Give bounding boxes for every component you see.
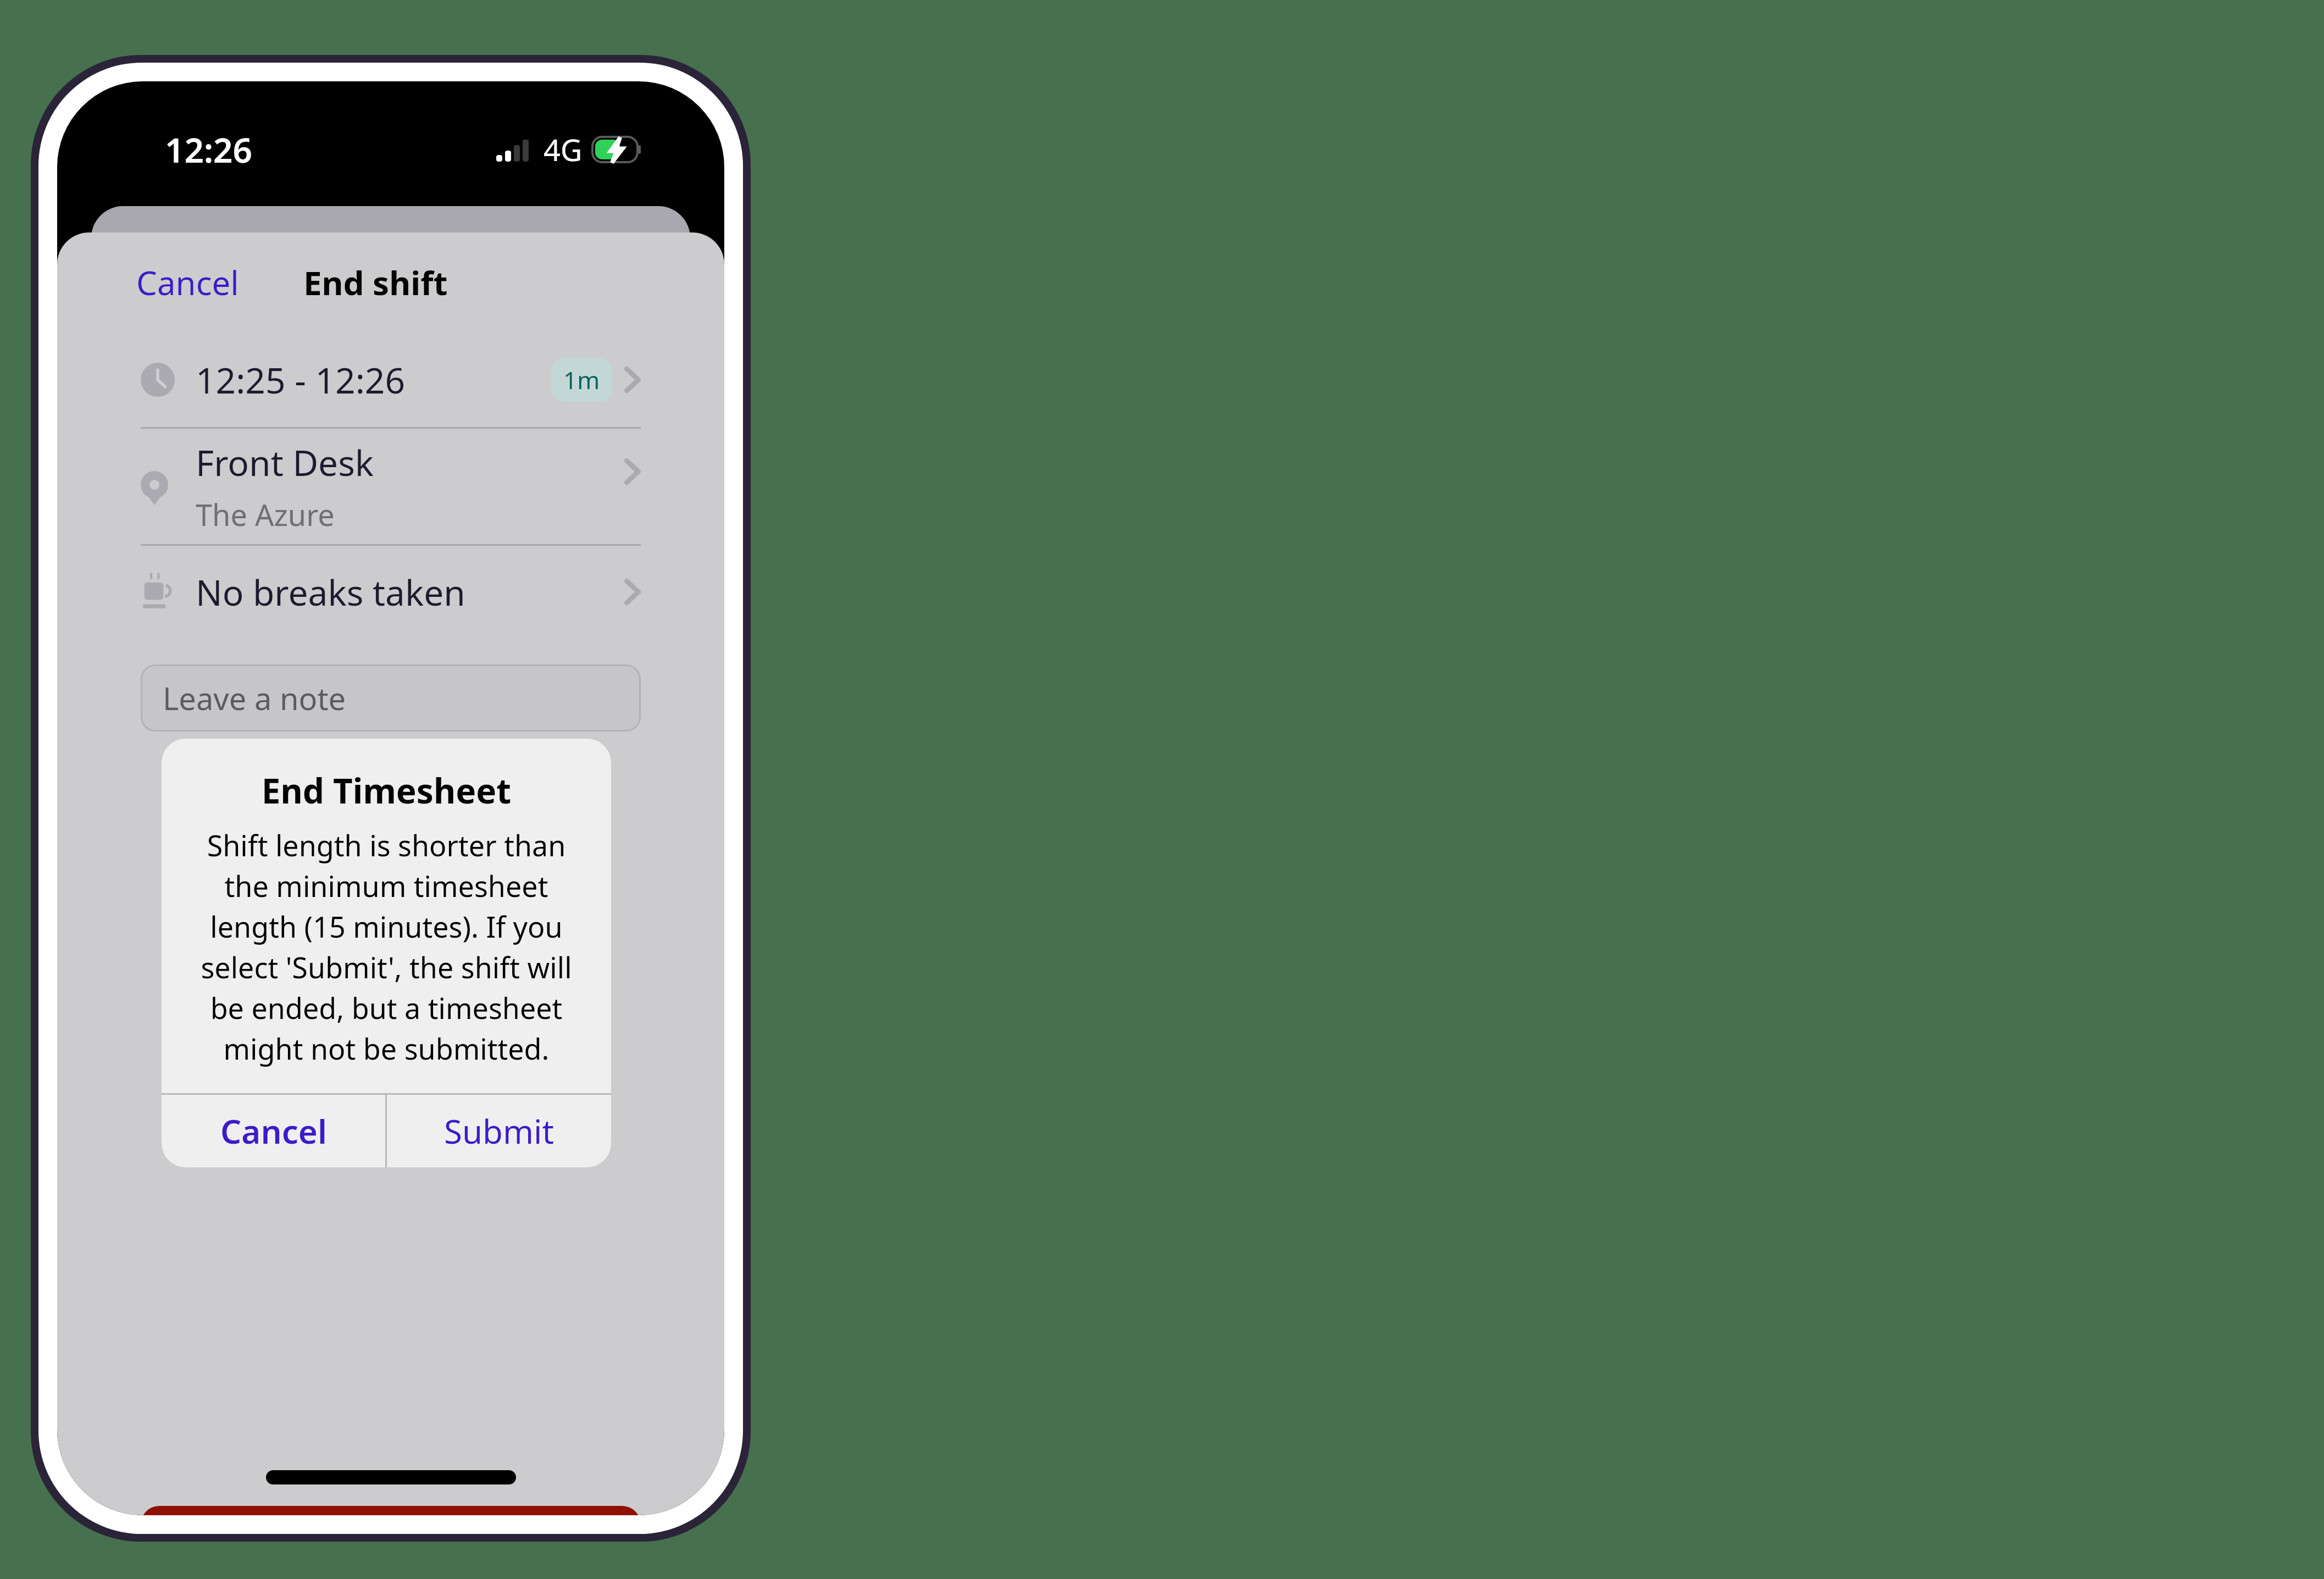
staticText: No breaks taken (196, 568, 465, 616)
button[interactable]: Front Desk (57, 429, 724, 544)
staticText: End shift (303, 260, 448, 305)
staticText: 1m (563, 363, 600, 396)
staticText: Leave a note (163, 677, 346, 719)
button[interactable]: Leave a note (141, 664, 641, 732)
button[interactable]: Submit (387, 1095, 611, 1167)
staticText: 4G (543, 129, 583, 170)
staticText: Shift length is shorter than the minimum… (190, 825, 583, 1068)
staticText: Cancel (136, 260, 239, 305)
staticText: 12:26 (165, 126, 252, 173)
staticText: The Azure (196, 494, 335, 535)
staticText: 12:25 - 12:26 (196, 356, 406, 404)
staticText: Cancel (220, 1109, 327, 1154)
staticText: Submit (444, 1109, 554, 1154)
button[interactable]: 12:25 - 12:26 (57, 333, 724, 427)
button[interactable]: Cancel (129, 254, 247, 311)
staticText: Front Desk (196, 439, 374, 486)
button[interactable]: No breaks taken (57, 546, 724, 638)
staticText: End Timesheet (162, 767, 611, 813)
button[interactable]: End shift (141, 1506, 641, 1515)
button[interactable]: Cancel (162, 1095, 385, 1167)
